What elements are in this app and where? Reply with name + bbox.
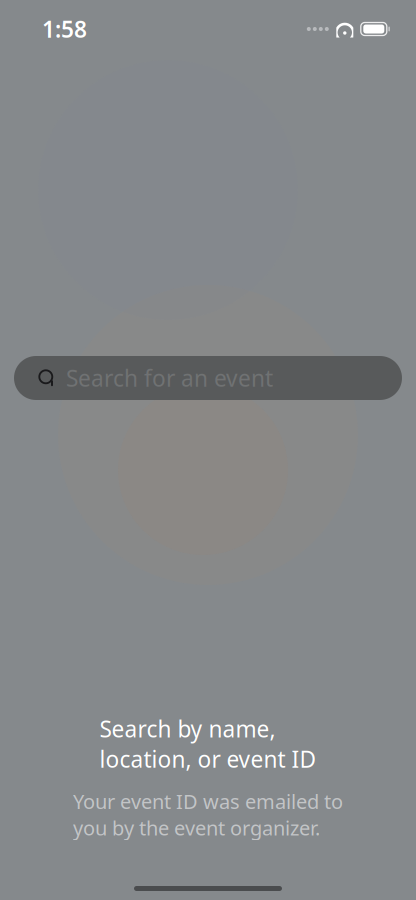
staticText: Search for an event xyxy=(66,363,273,393)
staticText: 1:58 xyxy=(42,14,87,44)
button[interactable]: Search for an event xyxy=(14,356,402,400)
staticText: Your event ID was emailed to you by the … xyxy=(73,788,343,841)
staticText: Search by name, location, or event ID xyxy=(99,714,316,774)
